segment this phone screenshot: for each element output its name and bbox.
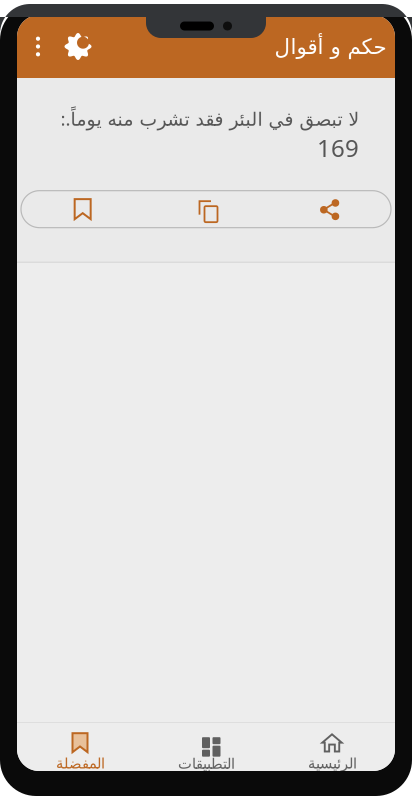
- staticText: الرئيسية: [307, 755, 356, 772]
- staticText: لا تبصق في البئر فقد تشرب منه يوماً.:: [60, 106, 359, 131]
- button[interactable]: المفضلة: [17, 722, 143, 771]
- staticText: 169: [317, 132, 359, 164]
- button[interactable]: Share: [268, 191, 391, 227]
- staticText: التطبيقات: [177, 755, 234, 772]
- button[interactable]: More options: [22, 15, 54, 78]
- button[interactable]: Toggle night mode: [54, 15, 102, 78]
- button[interactable]: Bookmark: [21, 191, 144, 227]
- button[interactable]: Copy: [144, 191, 268, 227]
- staticText: المفضلة: [55, 755, 104, 772]
- button[interactable]: التطبيقات: [143, 722, 269, 771]
- staticText: حكم و أقوال: [274, 34, 386, 59]
- button[interactable]: الرئيسية: [269, 722, 395, 771]
